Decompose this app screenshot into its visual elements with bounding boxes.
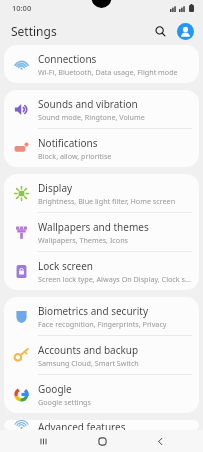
staticText: Wi-Fi, Bluetooth, Data usage, Flight mod… bbox=[38, 67, 178, 77]
staticText: Advanced features bbox=[38, 420, 126, 430]
staticText: Google settings bbox=[38, 397, 91, 407]
staticText: Sound mode, Ringtone, Volume bbox=[38, 112, 145, 122]
staticText: Block, allow, prioritise bbox=[38, 151, 112, 161]
staticText: Face recognition, Fingerprints, Privacy bbox=[38, 319, 167, 329]
staticText: Biometrics and security bbox=[38, 304, 148, 318]
staticText: Wallpapers and themes bbox=[38, 220, 149, 234]
staticText: Notifications bbox=[38, 136, 98, 150]
staticText: Brightness, Blue light filter, Home scre… bbox=[38, 196, 176, 206]
staticText: Samsung Cloud, Smart Switch bbox=[38, 358, 139, 368]
button[interactable]: Advanced features bbox=[4, 420, 199, 430]
staticText: Sounds and vibration bbox=[38, 97, 138, 111]
staticText: Display bbox=[38, 181, 73, 195]
button[interactable]: Sounds and vibration bbox=[4, 90, 199, 128]
staticText: Lock screen bbox=[38, 259, 94, 273]
button[interactable]: Home bbox=[87, 430, 117, 452]
staticText: Settings bbox=[11, 23, 57, 39]
button[interactable]: Account bbox=[175, 21, 195, 41]
button[interactable]: Accounts and backup bbox=[4, 336, 199, 374]
button[interactable]: Recents bbox=[28, 430, 58, 452]
staticText: Google bbox=[38, 382, 72, 396]
staticText: Accounts and backup bbox=[38, 343, 139, 357]
staticText: Wallpapers, Themes, Icons bbox=[38, 235, 129, 245]
button[interactable]: Notifications bbox=[4, 129, 199, 167]
staticText: Connections bbox=[38, 52, 97, 66]
button[interactable]: Wallpapers and themes bbox=[4, 213, 199, 251]
button[interactable]: Biometrics and security bbox=[4, 297, 199, 335]
button[interactable]: Display bbox=[4, 174, 199, 212]
button[interactable]: Connections bbox=[4, 45, 199, 83]
staticText: 10:00 bbox=[12, 3, 32, 13]
button[interactable]: Back bbox=[145, 430, 175, 452]
button[interactable]: Google bbox=[4, 375, 199, 413]
button[interactable]: Search bbox=[149, 20, 171, 42]
button[interactable]: Lock screen bbox=[4, 252, 199, 290]
staticText: Screen lock type, Always On Display, Clo… bbox=[38, 274, 191, 284]
